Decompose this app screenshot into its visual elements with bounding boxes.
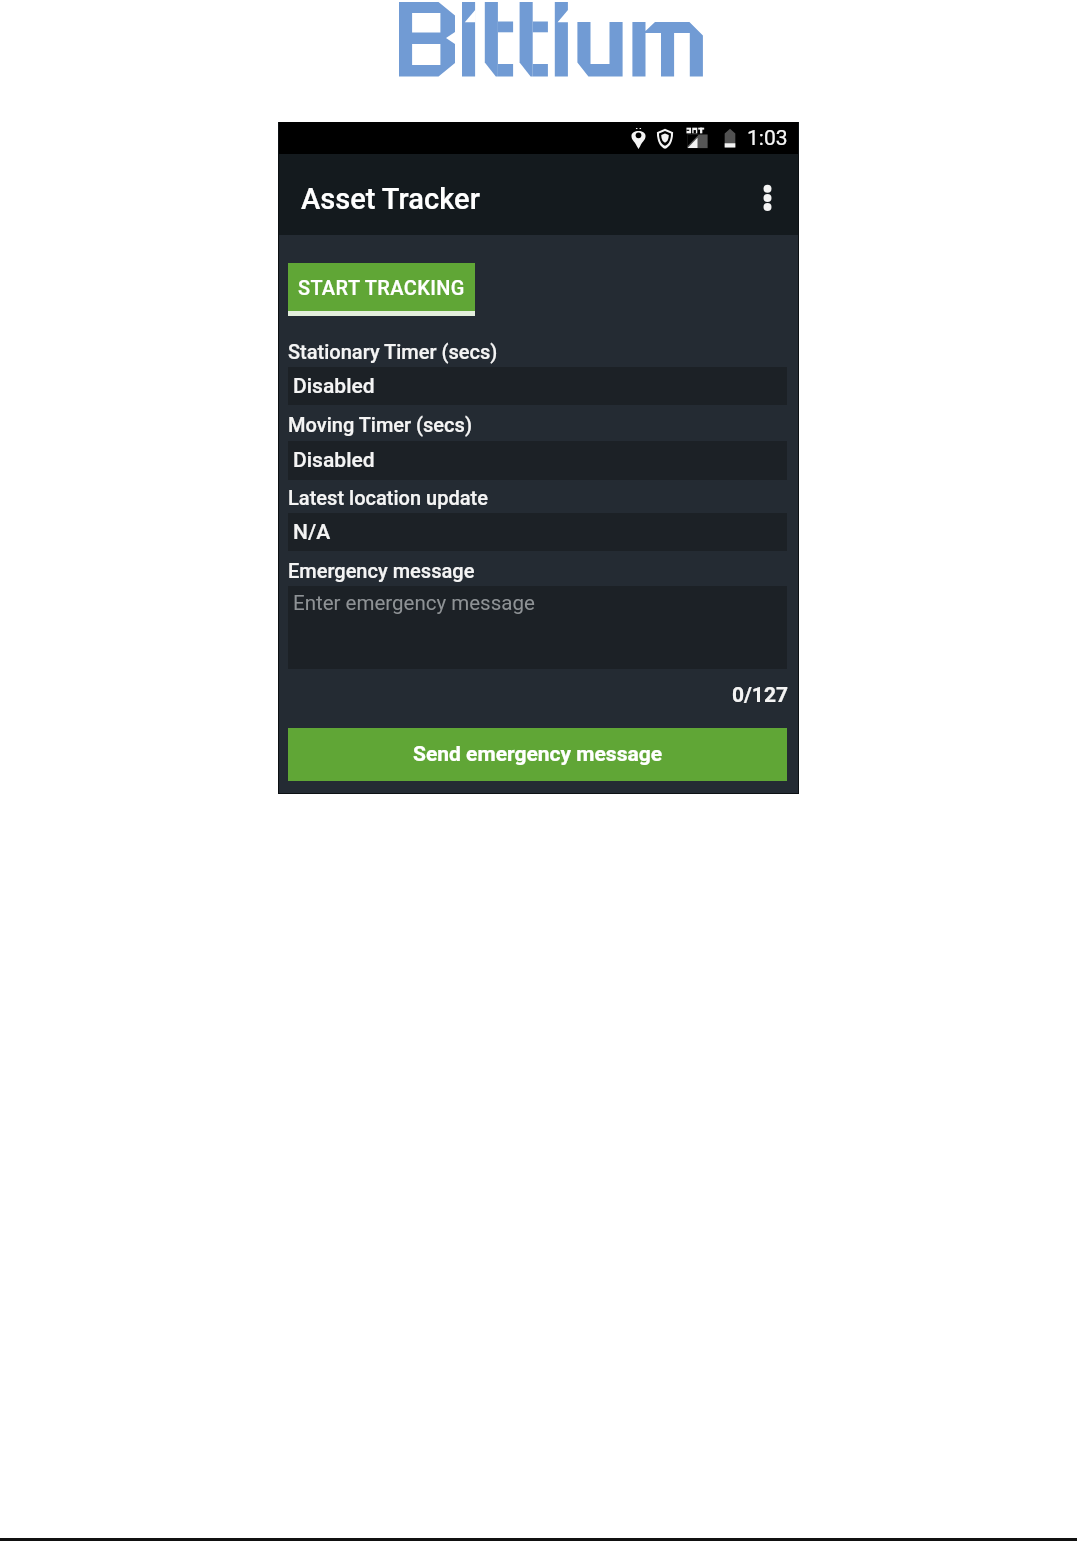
button[interactable]: Send emergency message: [288, 728, 787, 781]
button[interactable]: Enter emergency message: [288, 586, 787, 669]
staticText: 1:03: [747, 126, 788, 151]
button[interactable]: More options: [746, 168, 789, 224]
staticText: N/A: [293, 520, 331, 545]
button[interactable]: N/A: [288, 513, 787, 551]
button[interactable]: START TRACKING: [288, 263, 475, 311]
button[interactable]: Disabled: [288, 441, 787, 480]
staticText: START TRACKING: [298, 276, 465, 299]
staticText: 0/127: [278, 683, 788, 708]
staticText: Asset Tracker: [301, 182, 480, 216]
staticText: Disabled: [293, 448, 375, 473]
staticText: Emergency message: [288, 559, 475, 582]
staticText: Latest location update: [288, 486, 488, 509]
staticText: Moving Timer (secs): [288, 413, 472, 436]
staticText: Stationary Timer (secs): [288, 340, 498, 363]
staticText: Send emergency message: [413, 742, 663, 767]
staticText: Enter emergency message: [293, 591, 535, 615]
button[interactable]: Disabled: [288, 367, 787, 405]
staticText: Disabled: [293, 374, 375, 399]
